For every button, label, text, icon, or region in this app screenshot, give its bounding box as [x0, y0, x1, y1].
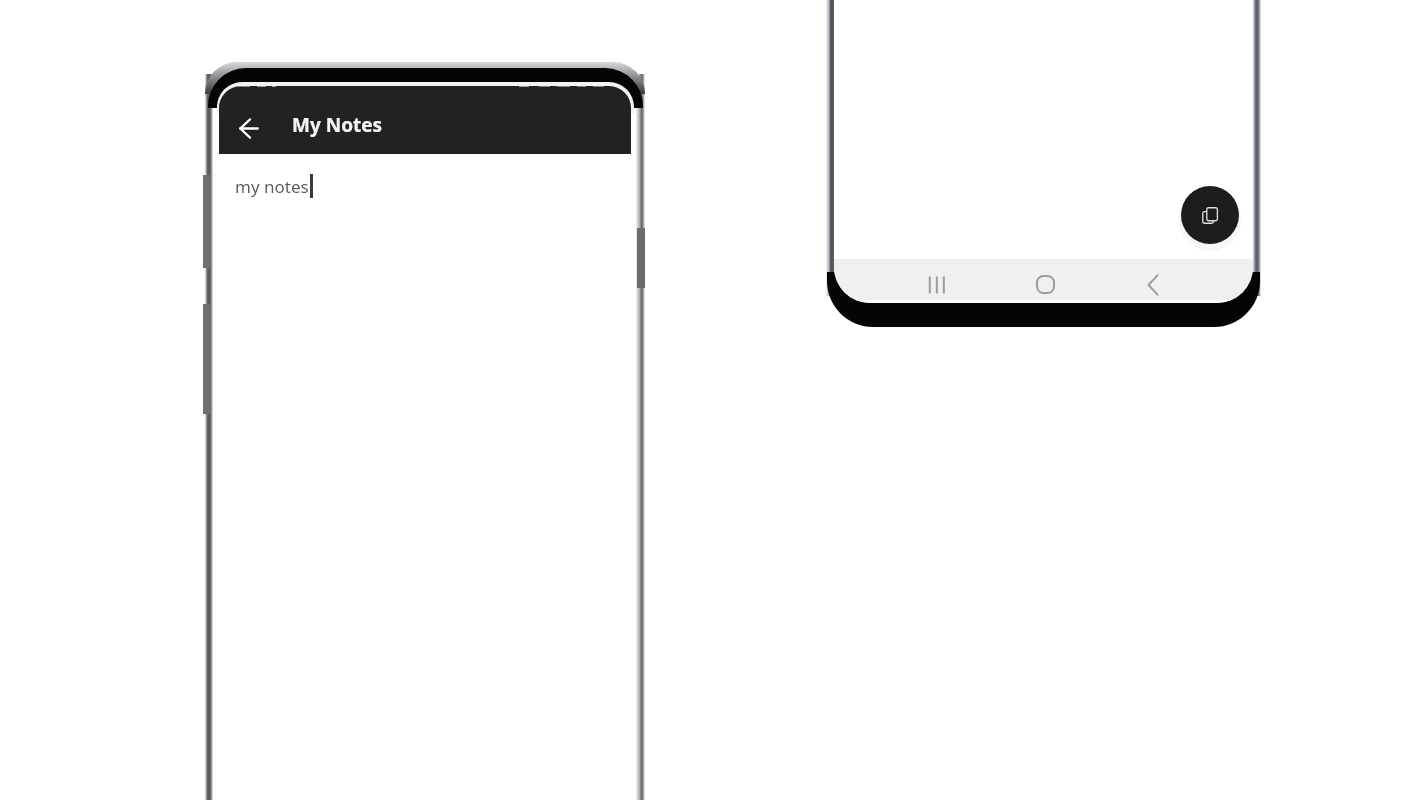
button[interactable]: Duplicate note — [1181, 186, 1239, 244]
button[interactable]: Back — [1120, 269, 1188, 300]
button[interactable]: Back — [228, 108, 268, 148]
staticText: my notes — [235, 175, 309, 198]
button[interactable]: Recent apps — [903, 269, 971, 300]
staticText: My Notes — [292, 112, 383, 138]
button[interactable]: Home — [1011, 269, 1079, 300]
